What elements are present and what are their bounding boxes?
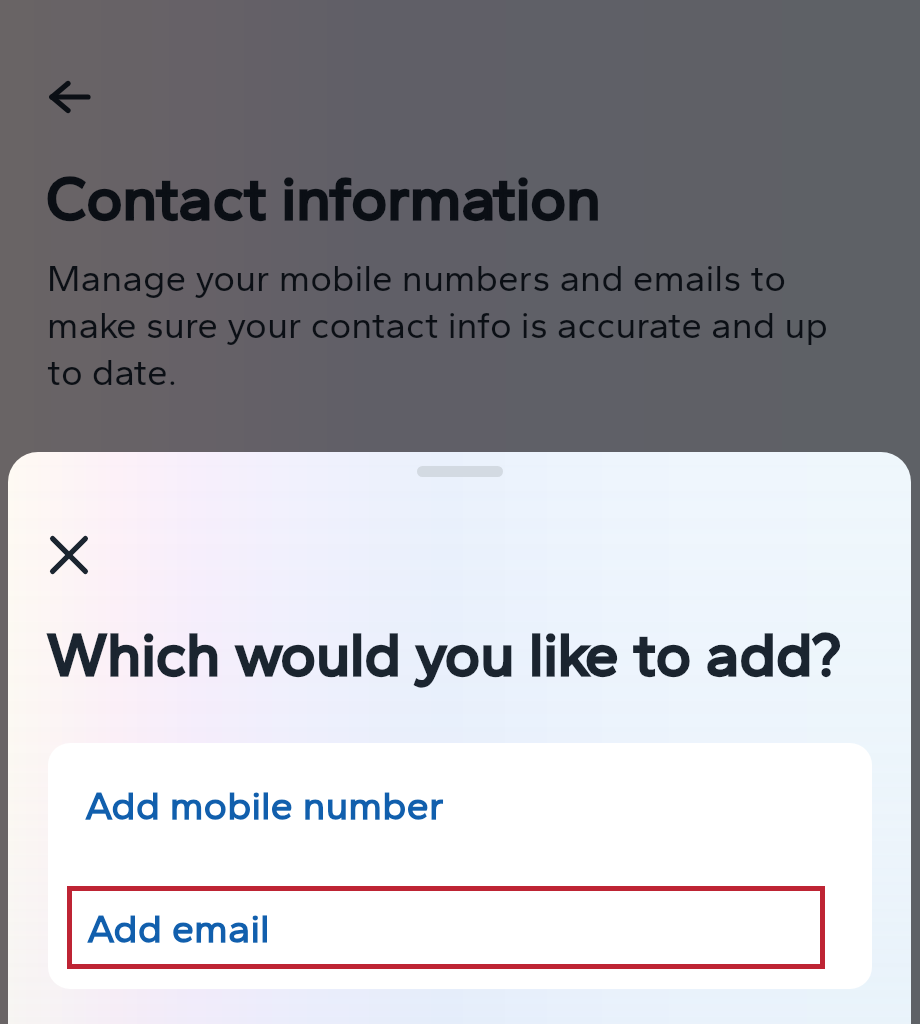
staticText: Contact information bbox=[46, 161, 601, 234]
button[interactable]: Add mobile number bbox=[48, 743, 872, 866]
staticText: Which would you like to add? bbox=[47, 618, 841, 690]
staticText: Add email bbox=[87, 904, 270, 952]
button[interactable]: Add email bbox=[48, 866, 872, 989]
staticText: Manage your mobile numbers and emails to… bbox=[47, 254, 852, 395]
button[interactable]: Close bbox=[31, 517, 107, 593]
staticText: Contact information bbox=[46, 161, 601, 234]
staticText: Add mobile number bbox=[85, 781, 444, 829]
staticText: Which would you like to add? bbox=[47, 618, 841, 690]
button[interactable]: Back bbox=[36, 63, 104, 131]
